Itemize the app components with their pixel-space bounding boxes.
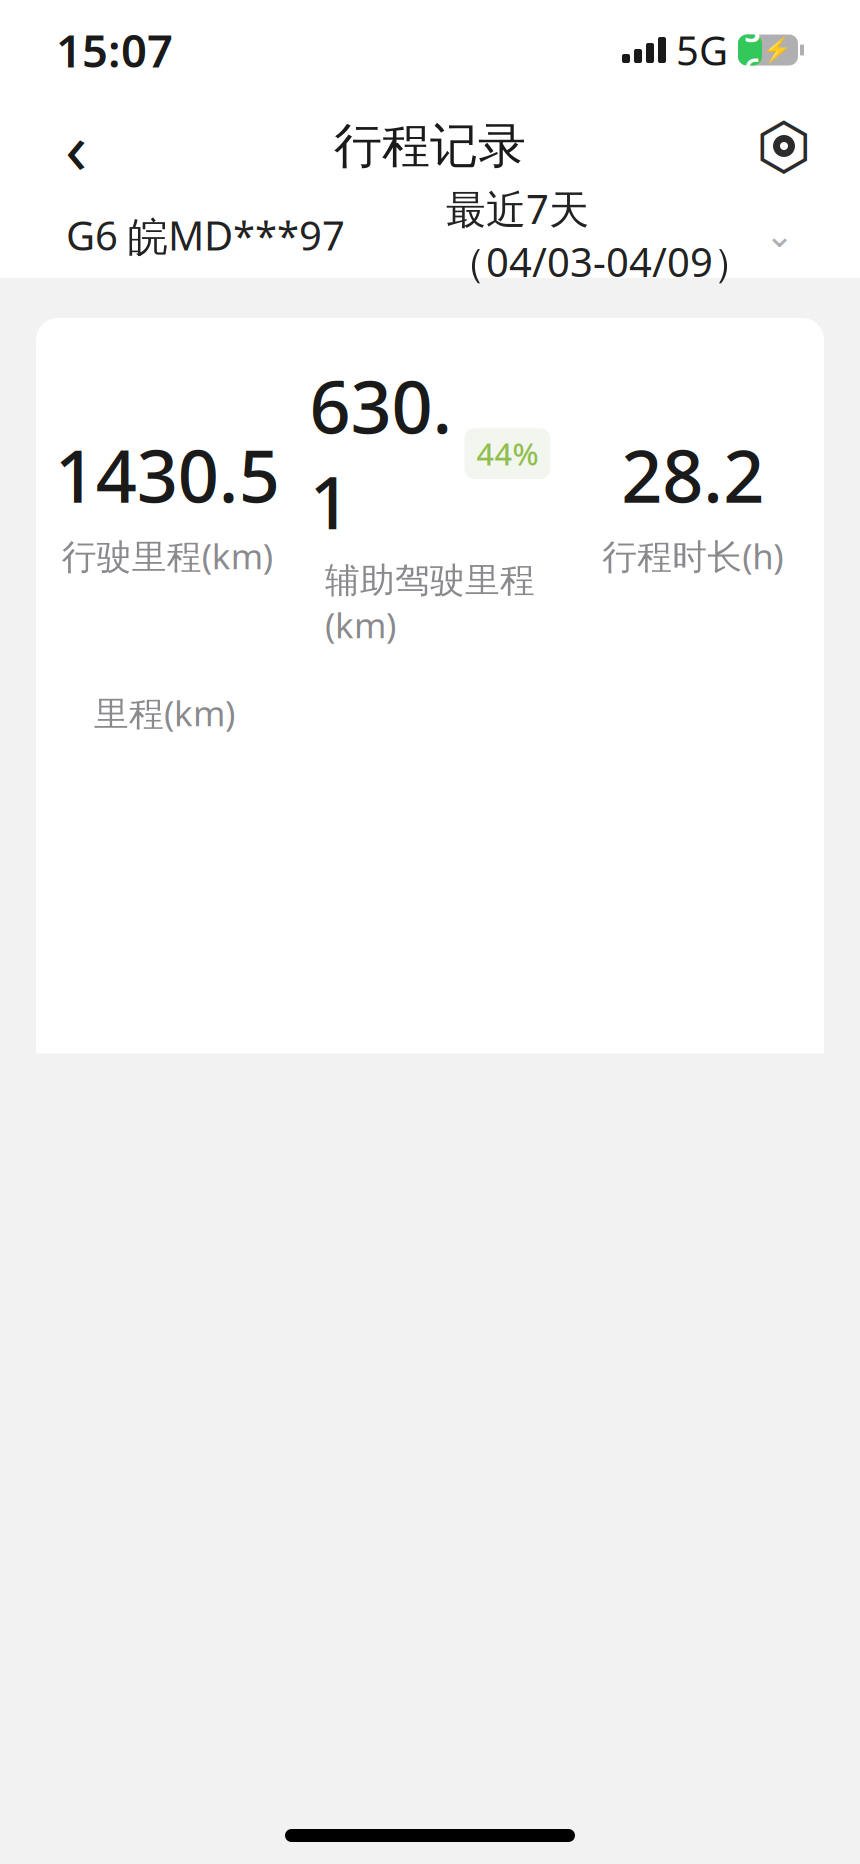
staticText: G6 皖MD***97 (66, 208, 345, 262)
staticText: ⬡ (756, 110, 812, 182)
button[interactable]: G6 皖MD***97 (66, 196, 345, 274)
staticText: ⚡ (761, 36, 791, 64)
button[interactable]: 设置 (746, 108, 822, 184)
button[interactable]: 返回 (38, 108, 114, 184)
button[interactable]: 最近7天（04/03-04/09） (446, 170, 794, 300)
staticText: 行驶里程(km) (62, 533, 273, 579)
staticText: 辅助驾驶里程(km) (325, 559, 535, 648)
staticText: ‹ (65, 98, 87, 194)
staticText: 1430.5 (55, 427, 280, 523)
staticText: 行程记录 (334, 116, 526, 175)
staticText: 28.2 (621, 427, 764, 523)
staticText: ⌄ (765, 215, 794, 255)
staticText: 行程时长(h) (602, 533, 783, 579)
staticText: 里程(km) (94, 690, 235, 736)
staticText: 630.1 (309, 358, 452, 549)
staticText: 44% (476, 433, 538, 474)
staticText: 36 (744, 13, 760, 87)
staticText: 15:07 (56, 20, 173, 80)
staticText: 最近7天（04/03-04/09） (446, 182, 753, 288)
staticText: 5G (676, 23, 728, 76)
